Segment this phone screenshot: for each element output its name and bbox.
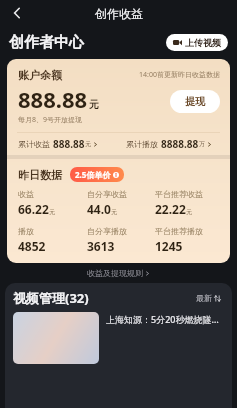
- staticText: 收益及提现规则: [87, 268, 143, 278]
- staticText: 账户余额: [18, 68, 62, 82]
- button[interactable]: 累计收益: [7, 133, 118, 155]
- staticText: 14:00前更新昨日收益数据: [139, 70, 220, 80]
- staticText: 提现: [185, 95, 205, 108]
- staticText: 元: [186, 208, 192, 216]
- staticText: 最新: [196, 293, 212, 303]
- button[interactable]: 上传视频: [166, 34, 228, 51]
- staticText: 元: [111, 208, 117, 216]
- staticText: 888.88: [18, 84, 88, 114]
- staticText: 上传视频: [185, 37, 221, 48]
- staticText: 22.22: [155, 201, 186, 217]
- staticText: 元: [89, 98, 99, 111]
- button[interactable]: Back: [4, 0, 30, 26]
- staticText: 平台推荐收益: [155, 189, 203, 199]
- staticText: 自分享收益: [87, 189, 127, 199]
- button[interactable]: 最新: [193, 291, 224, 305]
- staticText: 66.22: [18, 201, 49, 217]
- button[interactable]: 收益及提现规则: [81, 266, 156, 280]
- button[interactable]: 提现: [170, 90, 220, 113]
- staticText: 1245: [155, 238, 183, 254]
- staticText: 3613: [87, 238, 115, 254]
- staticText: 昨日数据: [18, 168, 62, 182]
- staticText: 创作收益: [95, 6, 143, 21]
- staticText: 元: [49, 208, 55, 216]
- button[interactable]: 累计播放: [118, 133, 230, 155]
- staticText: 万: [199, 140, 205, 148]
- staticText: 累计播放: [126, 139, 158, 149]
- staticText: 平台推荐播放: [155, 226, 203, 236]
- staticText: 888.88: [53, 137, 85, 151]
- staticText: 每月8、9号开放提现: [18, 115, 83, 125]
- staticText: 创作者中心: [9, 33, 84, 52]
- staticText: 元: [85, 140, 91, 148]
- staticText: 上海知源：5分20秒燃烧隧…: [106, 313, 219, 325]
- button[interactable]: 2.5倍单价: [70, 167, 124, 182]
- staticText: 4852: [18, 238, 46, 254]
- staticText: 44.0: [87, 201, 111, 217]
- button[interactable]: 上海知源：5分20秒燃烧隧…: [5, 312, 232, 364]
- staticText: 累计收益: [18, 139, 50, 149]
- staticText: 收益: [18, 189, 34, 199]
- staticText: 2.5倍单价: [75, 169, 111, 180]
- staticText: 8888.88: [161, 137, 199, 151]
- staticText: 播放: [18, 226, 34, 236]
- staticText: 自分享播放: [87, 226, 127, 236]
- staticText: 视频管理(32): [13, 289, 89, 307]
